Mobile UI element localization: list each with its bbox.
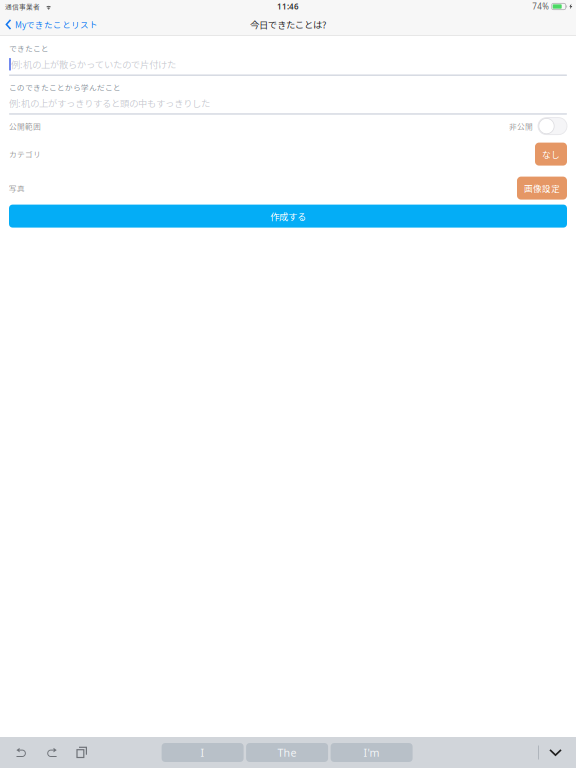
staticText: 公開範囲 xyxy=(9,120,41,132)
staticText: I'm xyxy=(364,745,380,760)
staticText: 例:机の上がすっきりすると頭の中もすっきりした xyxy=(9,96,210,110)
button[interactable]: なし xyxy=(535,143,567,166)
button[interactable]: I xyxy=(162,743,244,762)
staticText: 11:46 xyxy=(277,1,299,12)
button[interactable]: 作成する xyxy=(9,205,567,228)
staticText: 作成する xyxy=(270,209,306,223)
button[interactable]: Paste xyxy=(76,746,88,758)
staticText: このできたことから学んだこと xyxy=(9,82,121,93)
staticText: カテゴリ xyxy=(9,148,41,160)
staticText: 今日できたことは? xyxy=(250,18,326,31)
staticText: 写真 xyxy=(9,182,25,194)
button[interactable]: Redo xyxy=(46,746,57,758)
staticText: I xyxy=(201,745,205,760)
button[interactable]: The xyxy=(246,743,328,762)
staticText: 74% xyxy=(532,1,549,12)
staticText: できたこと xyxy=(9,43,49,54)
button[interactable]: I'm xyxy=(331,743,413,762)
button[interactable]: Myできたことリスト xyxy=(0,13,106,36)
button[interactable]: 画像設定 xyxy=(517,177,567,200)
staticText: 通信事業者 xyxy=(5,2,40,11)
button[interactable]: 非公開 xyxy=(538,118,567,135)
staticText: 画像設定 xyxy=(524,182,560,194)
staticText: なし xyxy=(542,148,560,160)
button[interactable]: Dismiss keyboard xyxy=(549,749,562,756)
staticText: The xyxy=(278,745,297,760)
staticText: 例:机の上が散らかっていたので片付けた xyxy=(11,57,176,71)
button[interactable]: Undo xyxy=(16,746,27,758)
staticText: 非公開 xyxy=(509,120,533,132)
staticText: Myできたことリスト xyxy=(15,18,98,31)
